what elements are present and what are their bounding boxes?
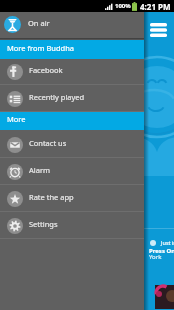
staticText: Recently played — [29, 92, 85, 102]
button[interactable]: Facebook — [0, 58, 144, 85]
staticText: 100% — [115, 2, 131, 10]
button[interactable]: Alarm — [0, 158, 144, 185]
button[interactable]: Settings — [0, 212, 144, 239]
staticText: Alarm — [29, 165, 51, 175]
button[interactable]: Rate the app — [0, 185, 144, 212]
button[interactable]: Contact us — [0, 131, 144, 158]
button[interactable]: Recently played — [0, 85, 144, 112]
staticText: Rate the app — [29, 192, 74, 202]
button[interactable]: Open navigation drawer — [147, 19, 170, 40]
staticText: More from Buddha — [7, 43, 75, 53]
staticText: 4:21 PM — [140, 1, 171, 12]
staticText: Settings — [29, 219, 58, 229]
button[interactable]: Just in — [150, 239, 174, 246]
staticText: Facebook — [29, 65, 63, 75]
staticText: Contact us — [29, 138, 67, 148]
button[interactable]: More — [0, 112, 144, 130]
button[interactable]: On air — [0, 12, 144, 38]
button[interactable]: More from Buddha — [0, 40, 144, 59]
staticText: On air — [28, 18, 50, 28]
staticText: More — [7, 114, 26, 124]
staticText: Just in — [161, 239, 174, 246]
staticText: York — [149, 253, 162, 261]
staticText: Press On — [149, 247, 174, 255]
